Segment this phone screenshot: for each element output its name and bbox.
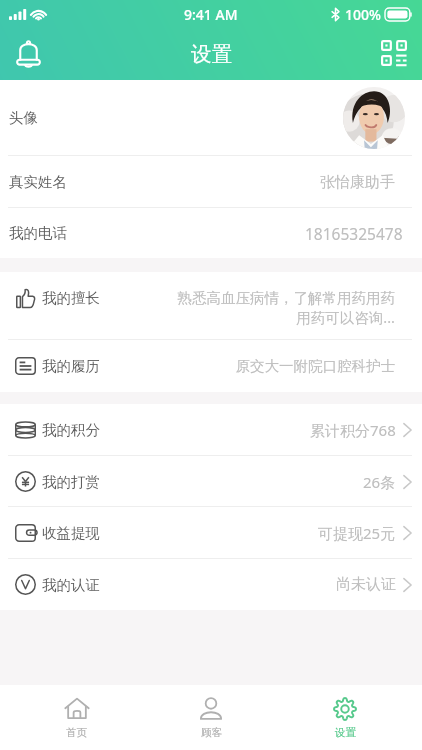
staticText: 我的认证 — [42, 576, 100, 594]
button[interactable]: 我的擅长 — [0, 272, 422, 340]
staticText: 设置 — [191, 41, 232, 67]
button[interactable]: Scan QR code — [370, 27, 418, 79]
button[interactable]: 收益提现 — [0, 507, 422, 559]
staticText: 熟悉高血压病情，了解常用药用药 — [177, 289, 395, 307]
button[interactable]: 顾客 — [144, 685, 278, 750]
staticText: 收益提现 — [42, 524, 100, 542]
staticText: 原交大一附院口腔科护士 — [235, 357, 395, 375]
staticText: 首页 — [66, 726, 87, 739]
button[interactable]: 真实姓名 — [0, 156, 422, 208]
button[interactable]: 我的认证 — [0, 559, 422, 610]
button[interactable]: 设置 — [278, 685, 412, 750]
staticText: 我的打赏 — [42, 473, 100, 491]
staticText: 9:41 AM — [184, 5, 238, 24]
staticText: 我的履历 — [42, 357, 100, 375]
staticText: 真实姓名 — [9, 173, 67, 191]
button[interactable]: 首页 — [9, 685, 144, 750]
button[interactable]: 我的积分 — [0, 404, 422, 456]
staticText: 18165325478 — [305, 223, 403, 244]
staticText: 累计积分768 — [310, 420, 396, 440]
button[interactable]: 我的履历 — [0, 340, 422, 392]
staticText: 尚未认证 — [336, 575, 396, 594]
staticText: 我的电话 — [9, 224, 67, 242]
staticText: 设置 — [335, 726, 356, 739]
staticText: 头像 — [9, 109, 38, 127]
staticText: 可提现25元 — [318, 523, 396, 543]
staticText: 100% — [345, 5, 381, 24]
button[interactable]: Notifications — [4, 27, 52, 79]
staticText: 用药可以咨询... — [296, 307, 395, 327]
staticText: 顾客 — [201, 726, 222, 739]
staticText: 张怡康助手 — [320, 173, 395, 192]
button[interactable]: 我的打赏 — [0, 456, 422, 507]
staticText: 我的积分 — [42, 421, 100, 439]
staticText: 26条 — [363, 472, 396, 492]
staticText: 我的擅长 — [42, 289, 100, 307]
button[interactable]: 头像 — [0, 80, 422, 156]
button[interactable]: 我的电话 — [0, 208, 422, 258]
